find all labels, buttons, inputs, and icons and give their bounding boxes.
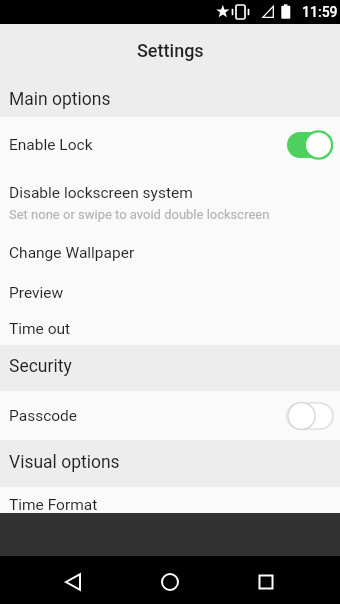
button[interactable]: Disable lockscreen system bbox=[0, 173, 340, 232]
button[interactable]: Passcode bbox=[0, 391, 340, 440]
staticText: Preview bbox=[9, 284, 64, 302]
button[interactable] bbox=[153, 563, 187, 597]
staticText: Time Format bbox=[9, 496, 98, 514]
staticText: Passcode bbox=[9, 407, 286, 425]
staticText: Enable Lock bbox=[9, 136, 286, 154]
button[interactable] bbox=[56, 563, 90, 597]
staticText: Visual options bbox=[9, 452, 120, 473]
button[interactable]: Preview bbox=[0, 274, 340, 312]
button[interactable] bbox=[249, 563, 283, 597]
staticText: 11:59 bbox=[302, 4, 338, 20]
staticText: Time out bbox=[9, 320, 71, 338]
staticText: Disable lockscreen system bbox=[9, 184, 193, 202]
button[interactable]: Time out bbox=[0, 312, 340, 345]
staticText: Settings bbox=[137, 40, 204, 61]
button[interactable]: Time Format bbox=[0, 487, 340, 535]
staticText: Set none or swipe to avoid double locksc… bbox=[9, 207, 270, 222]
button[interactable]: Change Wallpaper bbox=[0, 232, 340, 274]
staticText: Main options bbox=[9, 89, 111, 110]
staticText: Security bbox=[9, 356, 72, 377]
button[interactable]: Enable Lock bbox=[0, 117, 340, 173]
staticText: Change Wallpaper bbox=[9, 244, 135, 262]
